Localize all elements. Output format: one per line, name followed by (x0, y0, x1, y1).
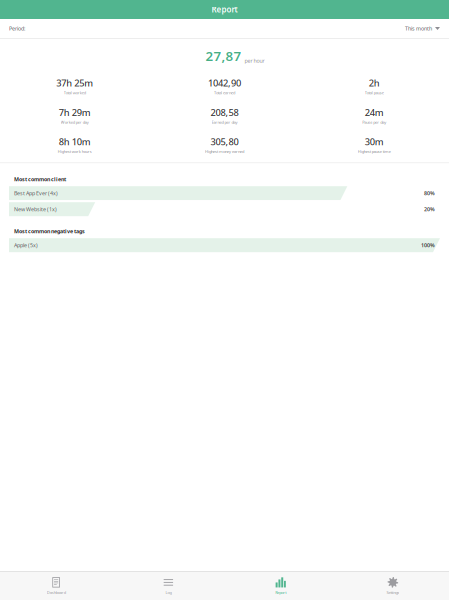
staticText: Total earned (214, 90, 235, 95)
staticText: Earned per day (211, 119, 237, 125)
staticText: 8h 10m (59, 135, 91, 148)
button[interactable]: This month (405, 25, 440, 32)
staticText: Highest pause time (358, 149, 391, 154)
button[interactable]: Best App Ever (4x) (9, 186, 440, 200)
staticText: 7h 29m (59, 106, 91, 118)
staticText: Settings (386, 590, 399, 595)
staticText: 80% (424, 190, 435, 197)
button[interactable]: New Website (1x) (9, 202, 440, 216)
staticText: Most common negative tags (14, 228, 85, 235)
button[interactable]: Report (224, 572, 337, 599)
staticText: This month (405, 25, 432, 32)
staticText: Worked per day (61, 119, 89, 125)
staticText: per hour (244, 57, 264, 64)
button[interactable]: Apple (5x) (9, 238, 440, 252)
staticText: Highest money earned (205, 149, 244, 154)
staticText: Pause per day (362, 119, 386, 125)
staticText: 1042,90 (208, 77, 241, 89)
staticText: Highest work hours (58, 149, 92, 154)
button[interactable]: Settings (337, 572, 449, 599)
staticText: Log (165, 590, 171, 595)
staticText: 208,58 (210, 106, 238, 118)
staticText: 27,87 (205, 47, 241, 65)
staticText: Apple (5x) (14, 242, 38, 249)
staticText: 100% (421, 242, 435, 249)
staticText: 37h 25m (56, 77, 93, 89)
staticText: Dashboard (47, 590, 66, 595)
staticText: Period: (9, 25, 25, 32)
staticText: Report (275, 590, 286, 595)
staticText: 20% (424, 206, 435, 213)
staticText: Report (211, 4, 237, 15)
staticText: Total pause (365, 90, 384, 95)
button[interactable]: Log (112, 572, 224, 599)
staticText: 30m (365, 135, 384, 148)
staticText: Best App Ever (4x) (14, 190, 58, 197)
staticText: New Website (1x) (14, 206, 57, 213)
staticText: 305,80 (210, 135, 238, 148)
staticText: Total worked (64, 90, 86, 95)
staticText: 24m (365, 106, 384, 118)
button[interactable]: Dashboard (0, 572, 112, 599)
staticText: 2h (369, 77, 380, 89)
staticText: Most common client (14, 176, 66, 183)
